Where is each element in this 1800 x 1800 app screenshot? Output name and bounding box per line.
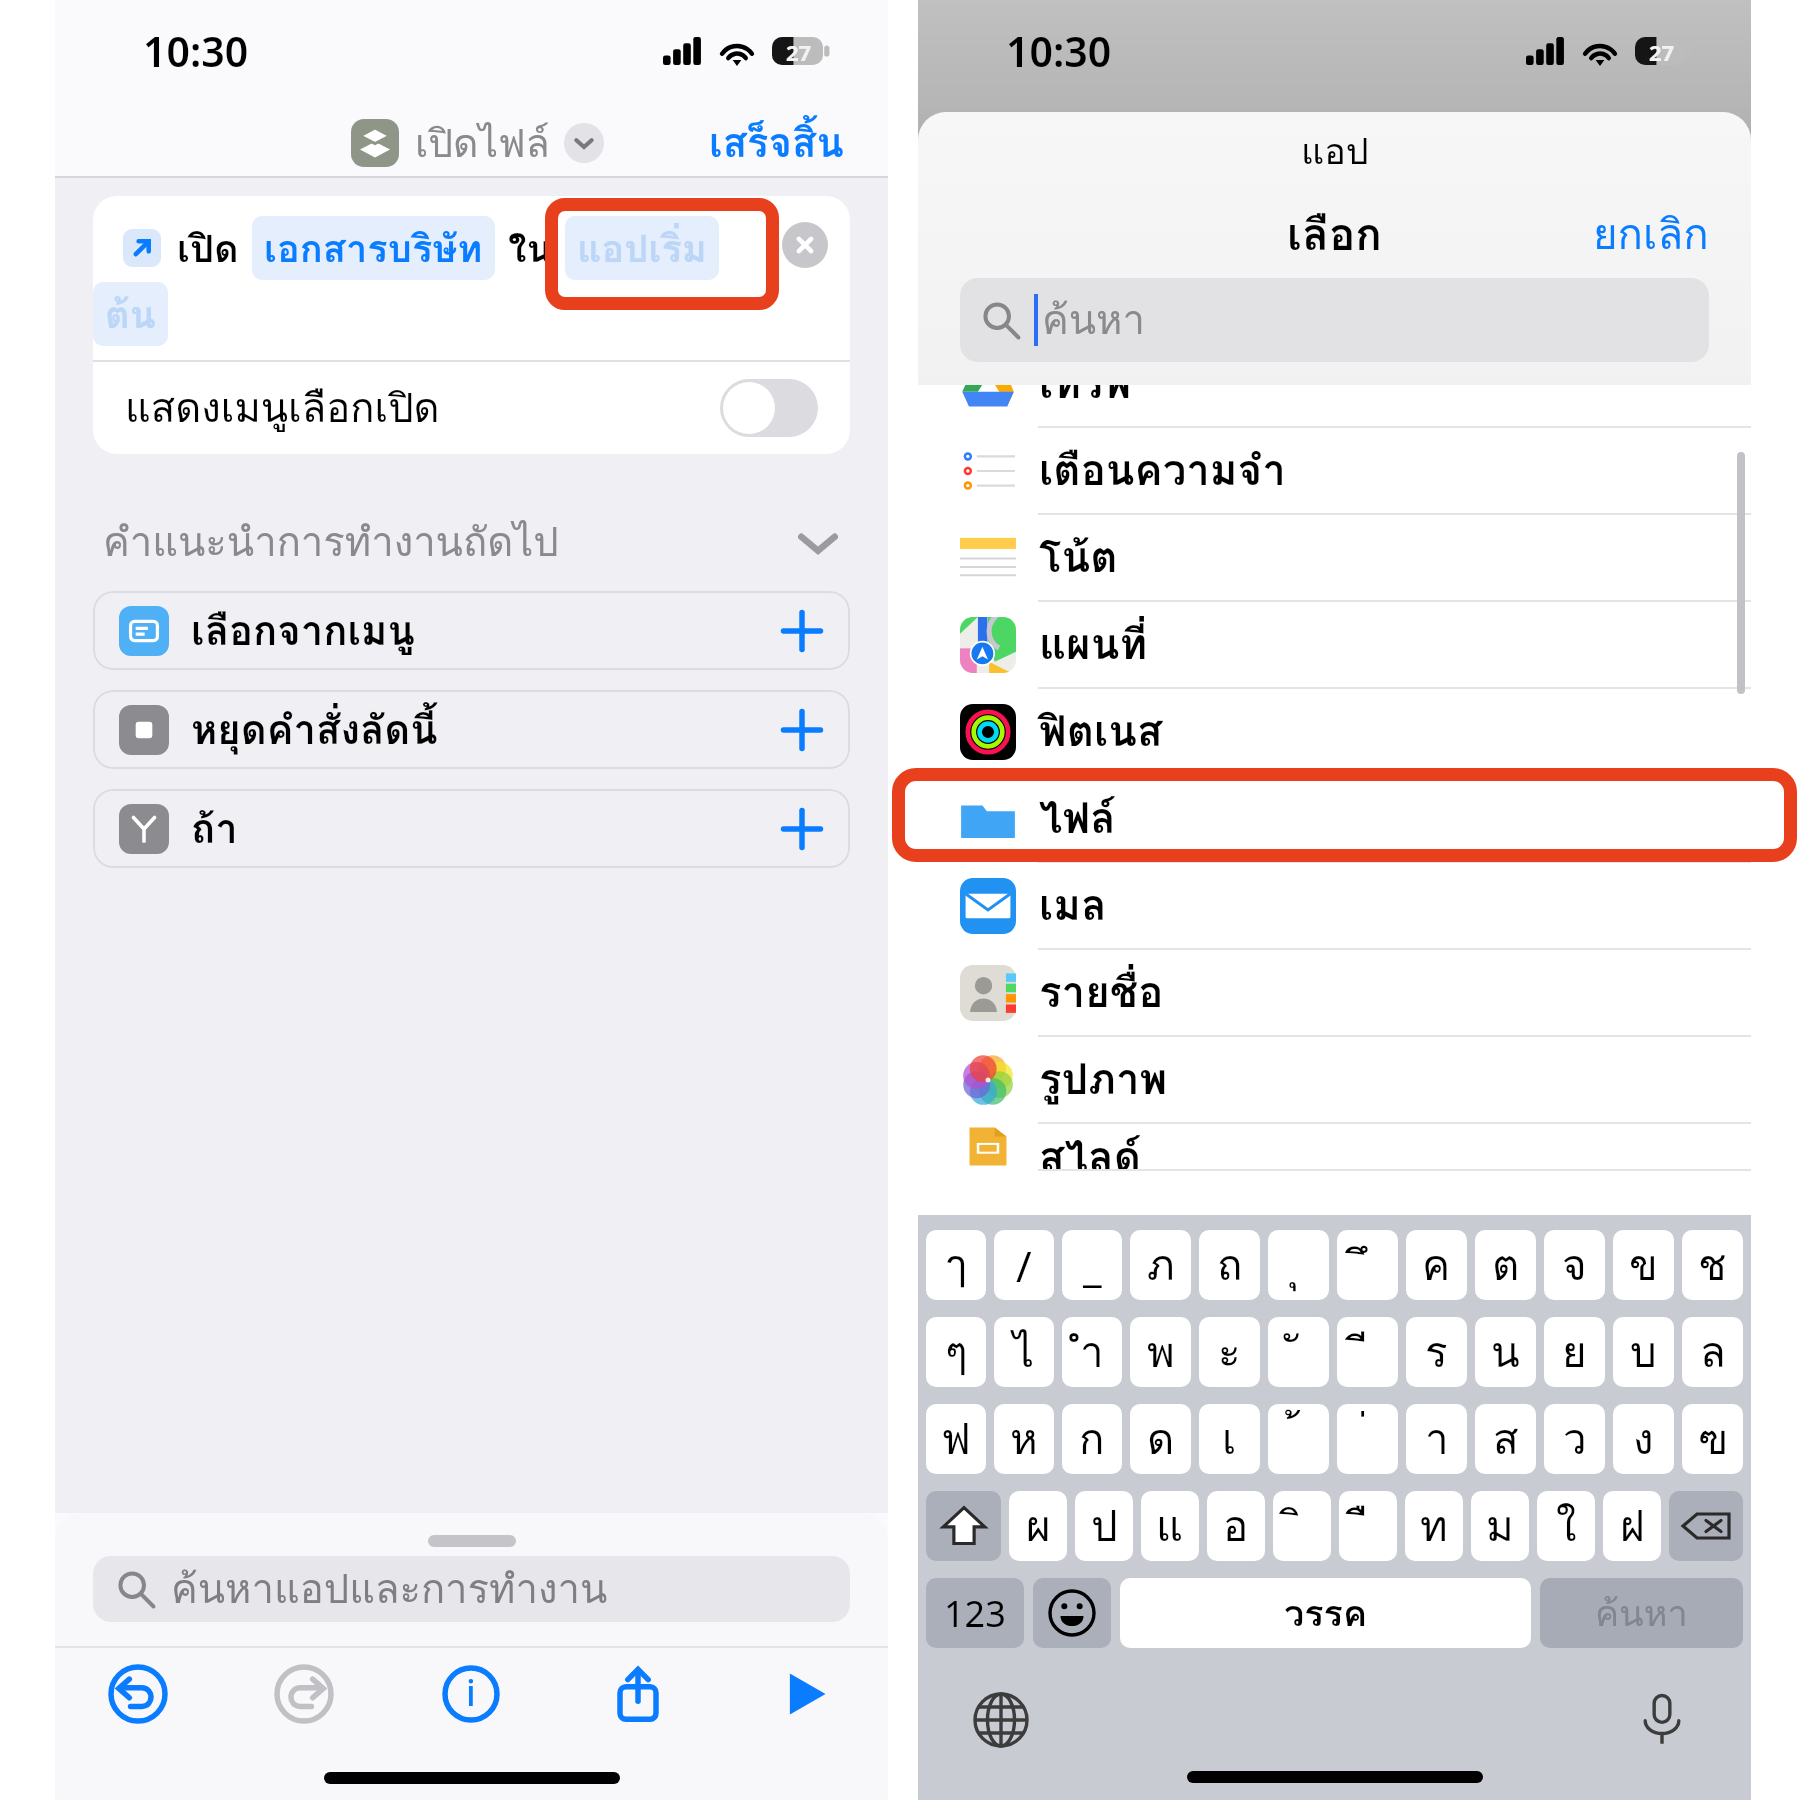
button[interactable]: ถ — [1199, 1230, 1260, 1300]
button[interactable]: เ — [1199, 1404, 1260, 1474]
staticText: หยุดคำสั่งลัดนี้ — [191, 698, 438, 762]
button[interactable]: ว — [1544, 1404, 1605, 1474]
button[interactable]: ก — [1062, 1404, 1122, 1474]
staticText: รายชื่อ — [1039, 959, 1164, 1026]
staticText: ย — [1562, 1319, 1587, 1386]
button[interactable]: ด — [1130, 1404, 1191, 1474]
button[interactable]: แผนที่ — [918, 602, 1751, 689]
button[interactable]: Shift — [926, 1491, 1001, 1561]
button[interactable]: ค — [1406, 1230, 1467, 1300]
button[interactable]: ย — [1544, 1317, 1605, 1387]
button[interactable]: แ — [1141, 1491, 1199, 1561]
button[interactable]: _ — [1062, 1230, 1122, 1300]
button[interactable]: Info — [387, 1648, 554, 1740]
button[interactable]: ภ — [1130, 1230, 1191, 1300]
button[interactable]: ป — [1075, 1491, 1133, 1561]
staticText: ง — [1633, 1406, 1654, 1473]
button[interactable]: ง — [1613, 1404, 1674, 1474]
button[interactable]: แสดงเมนูเลือกเปิด — [125, 362, 818, 454]
staticText: เตือนความจำ — [1039, 437, 1286, 504]
button[interactable]: โน้ต — [918, 515, 1751, 602]
button[interactable]: Collapse — [796, 520, 840, 564]
button[interactable]: รายชื่อ — [918, 950, 1751, 1037]
button[interactable]: ะ — [1199, 1317, 1260, 1387]
button[interactable]: ี — [1337, 1317, 1398, 1387]
staticText: ถ้า — [191, 797, 238, 861]
button[interactable]: ห — [994, 1404, 1054, 1474]
button[interactable]: ฟ — [926, 1404, 986, 1474]
button[interactable]: เตือนความจำ — [918, 428, 1751, 515]
button[interactable]: Backspace — [1669, 1491, 1743, 1561]
staticText: ก — [1079, 1406, 1105, 1473]
button[interactable]: Dictation — [1634, 1691, 1690, 1747]
button[interactable]: อ — [1207, 1491, 1265, 1561]
button[interactable]: เมล — [918, 863, 1751, 950]
button[interactable]: บ — [1613, 1317, 1674, 1387]
staticText: ป — [1091, 1493, 1118, 1560]
button[interactable]: ข — [1613, 1230, 1674, 1300]
button[interactable]: Emoji — [1033, 1578, 1111, 1648]
staticText: วรรค — [1284, 1585, 1367, 1642]
staticText: เอกสารบริษัท — [264, 218, 483, 278]
button[interactable]: ล — [1682, 1317, 1743, 1387]
button[interactable]: ึ — [1337, 1230, 1398, 1300]
button[interactable]: เสร็จสิ้น — [709, 111, 844, 175]
button[interactable]: / — [994, 1230, 1054, 1300]
button[interactable]: ถ้า — [93, 789, 850, 868]
button[interactable]: สไลด์ — [918, 1124, 1751, 1171]
button[interactable]: รูปภาพ — [918, 1037, 1751, 1124]
button[interactable]: เทรฟ — [918, 385, 1751, 428]
staticText: ช — [1698, 1232, 1727, 1299]
button[interactable]: ำ — [1062, 1317, 1122, 1387]
button[interactable]: ๆ — [926, 1317, 986, 1387]
button[interactable]: Undo — [55, 1648, 221, 1740]
button[interactable]: ิ — [1273, 1491, 1331, 1561]
staticText: ใน — [508, 218, 553, 278]
button[interactable]: จ — [1544, 1230, 1605, 1300]
staticText: เลือก — [1287, 199, 1382, 269]
button[interactable]: ฟิตเนส — [918, 689, 1751, 776]
staticText: ต — [1492, 1232, 1520, 1299]
button[interactable]: พ — [1130, 1317, 1191, 1387]
button[interactable]: ค้นหา — [960, 278, 1709, 362]
button[interactable]: ๅ — [926, 1230, 986, 1300]
button[interactable]: ไ — [994, 1317, 1054, 1387]
button[interactable]: วรรค — [1120, 1578, 1531, 1648]
button[interactable]: ใ — [1537, 1491, 1595, 1561]
button[interactable]: Next keyboard — [973, 1692, 1029, 1748]
staticText: เลือกจากเมนู — [191, 599, 415, 663]
button[interactable]: ร — [1406, 1317, 1467, 1387]
button[interactable]: ยกเลิก — [1593, 201, 1709, 268]
staticText: สไลด์ — [1039, 1124, 1141, 1169]
button[interactable]: ไฟล์ — [918, 776, 1751, 863]
button[interactable]: Share — [554, 1648, 721, 1740]
button[interactable]: Redo — [221, 1648, 387, 1740]
button[interactable]: ่ — [1337, 1404, 1398, 1474]
button[interactable]: ม — [1471, 1491, 1529, 1561]
button[interactable]: หยุดคำสั่งลัดนี้ — [93, 690, 850, 769]
staticText: คำแนะนำการทำงานถัดไป — [103, 510, 559, 574]
button[interactable]: า — [1406, 1404, 1467, 1474]
button[interactable]: ฝ — [1603, 1491, 1661, 1561]
staticText: ต้น — [105, 284, 156, 344]
button[interactable]: เลือกจากเมนู — [93, 591, 850, 670]
staticText: ภ — [1147, 1232, 1175, 1299]
button[interactable]: ื — [1339, 1491, 1397, 1561]
button[interactable]: 123 — [926, 1578, 1024, 1648]
button[interactable]: Run — [721, 1648, 888, 1740]
button[interactable]: ท — [1405, 1491, 1463, 1561]
button[interactable]: ค้นหาแอปและการทำงาน — [93, 1556, 850, 1622]
button[interactable]: น — [1475, 1317, 1536, 1387]
button[interactable]: ค้นหา — [1540, 1578, 1743, 1648]
button[interactable]: ุ — [1268, 1230, 1329, 1300]
staticText: ยกเลิก — [1593, 201, 1709, 268]
button[interactable]: ส — [1475, 1404, 1536, 1474]
button[interactable]: ผ — [1009, 1491, 1067, 1561]
button[interactable]: ฃ — [1682, 1404, 1743, 1474]
button[interactable]: Remove — [782, 222, 828, 268]
button[interactable]: ต — [1475, 1230, 1536, 1300]
button[interactable]: ้ — [1268, 1404, 1329, 1474]
button[interactable]: ช — [1682, 1230, 1743, 1300]
staticText: า — [1425, 1406, 1449, 1473]
button[interactable]: ั — [1268, 1317, 1329, 1387]
